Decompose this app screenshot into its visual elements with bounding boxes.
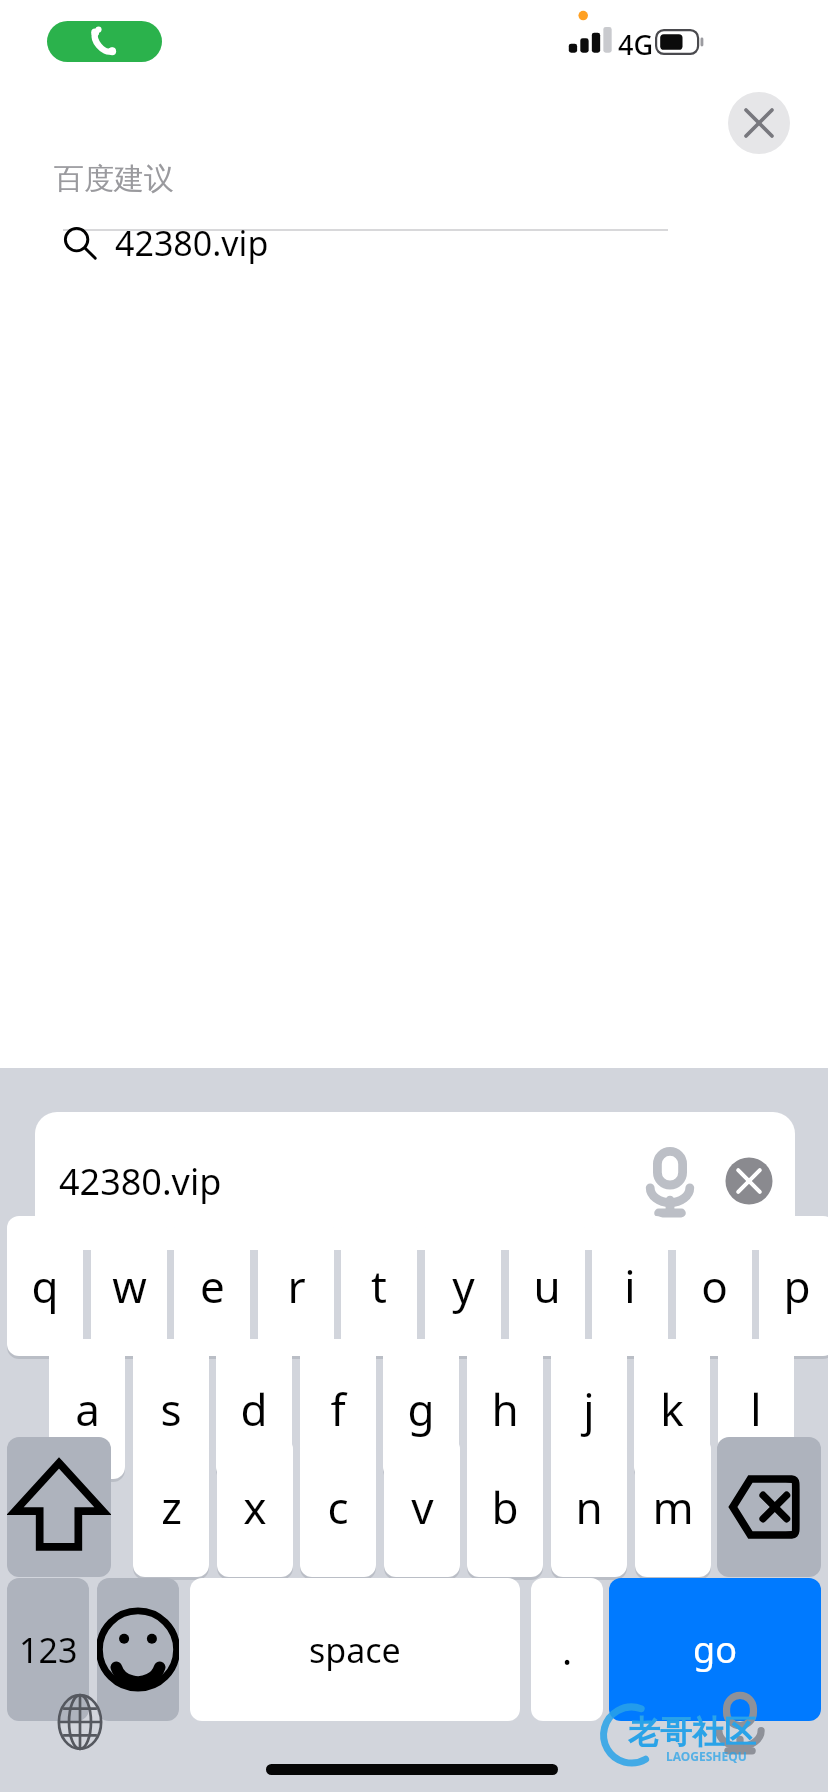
staticText: u bbox=[533, 1256, 561, 1316]
staticText: i bbox=[624, 1256, 636, 1316]
button[interactable]: Clear text bbox=[721, 1153, 777, 1209]
button[interactable]: h bbox=[467, 1339, 543, 1479]
staticText: d bbox=[240, 1379, 268, 1439]
staticText: 123 bbox=[19, 1627, 78, 1673]
button[interactable]: j bbox=[551, 1339, 627, 1479]
staticText: w bbox=[112, 1256, 147, 1316]
button[interactable]: u bbox=[509, 1216, 585, 1356]
staticText: space bbox=[309, 1627, 401, 1673]
staticText: 百度建议 bbox=[54, 160, 174, 198]
button[interactable]: v bbox=[384, 1437, 460, 1577]
button[interactable]: Dictation bbox=[708, 1686, 772, 1758]
button[interactable]: d bbox=[216, 1339, 292, 1479]
staticText: . bbox=[562, 1624, 573, 1676]
staticText: 42380.vip bbox=[115, 220, 269, 266]
button[interactable]: n bbox=[551, 1437, 627, 1577]
button[interactable]: c bbox=[300, 1437, 376, 1577]
button[interactable]: 42380.vip bbox=[35, 1112, 795, 1250]
button[interactable]: Return to call bbox=[47, 21, 162, 62]
button[interactable]: w bbox=[91, 1216, 167, 1356]
button[interactable]: Backspace bbox=[717, 1437, 821, 1577]
staticText: o bbox=[701, 1256, 728, 1316]
button[interactable]: a bbox=[49, 1339, 125, 1479]
button[interactable]: z bbox=[133, 1437, 209, 1577]
staticText: e bbox=[200, 1256, 225, 1316]
staticText: s bbox=[160, 1379, 182, 1439]
button[interactable]: l bbox=[718, 1339, 794, 1479]
button[interactable]: p bbox=[759, 1216, 828, 1356]
staticText: m bbox=[652, 1477, 694, 1537]
staticText: h bbox=[491, 1379, 519, 1439]
button[interactable]: b bbox=[467, 1437, 543, 1577]
staticText: p bbox=[783, 1256, 811, 1316]
staticText: b bbox=[491, 1477, 519, 1537]
button[interactable]: x bbox=[217, 1437, 293, 1577]
button[interactable]: Shift bbox=[7, 1437, 111, 1577]
button[interactable]: t bbox=[341, 1216, 417, 1356]
staticText: 42380.vip bbox=[59, 1157, 222, 1206]
staticText: z bbox=[161, 1477, 182, 1537]
staticText: x bbox=[243, 1477, 267, 1537]
button[interactable]: i bbox=[592, 1216, 668, 1356]
staticText: q bbox=[31, 1256, 59, 1316]
button[interactable]: 123 bbox=[7, 1578, 89, 1721]
button[interactable]: k bbox=[634, 1339, 710, 1479]
button[interactable]: go bbox=[609, 1578, 821, 1721]
staticText: g bbox=[407, 1379, 435, 1439]
button[interactable]: space bbox=[190, 1578, 520, 1721]
button[interactable]: r bbox=[258, 1216, 334, 1356]
button[interactable]: Close bbox=[728, 92, 790, 154]
staticText: k bbox=[660, 1379, 684, 1439]
button[interactable]: g bbox=[383, 1339, 459, 1479]
button[interactable]: y bbox=[425, 1216, 501, 1356]
button[interactable]: s bbox=[133, 1339, 209, 1479]
staticText: v bbox=[411, 1477, 434, 1537]
button[interactable]: q bbox=[7, 1216, 83, 1356]
staticText: 4G bbox=[618, 26, 654, 63]
button[interactable]: 42380.vip bbox=[0, 209, 828, 277]
button[interactable]: e bbox=[174, 1216, 250, 1356]
staticText: go bbox=[693, 1625, 737, 1674]
staticText: 老哥社区 bbox=[628, 1712, 756, 1752]
staticText: j bbox=[583, 1379, 595, 1439]
staticText: a bbox=[75, 1379, 100, 1439]
button[interactable]: . bbox=[531, 1578, 603, 1721]
button[interactable]: Voice input bbox=[640, 1141, 700, 1221]
staticText: n bbox=[575, 1477, 603, 1537]
staticText: y bbox=[452, 1256, 475, 1316]
staticText: l bbox=[750, 1379, 762, 1439]
button[interactable]: m bbox=[635, 1437, 711, 1577]
staticText: r bbox=[287, 1256, 306, 1316]
staticText: f bbox=[330, 1379, 346, 1439]
button[interactable]: Emoji bbox=[97, 1578, 179, 1721]
staticText: LAOGESHEQU bbox=[666, 1748, 747, 1764]
staticText: c bbox=[327, 1477, 349, 1537]
button[interactable]: Change keyboard language bbox=[48, 1690, 112, 1754]
button[interactable]: o bbox=[676, 1216, 752, 1356]
button[interactable]: f bbox=[300, 1339, 376, 1479]
staticText: t bbox=[371, 1256, 387, 1316]
